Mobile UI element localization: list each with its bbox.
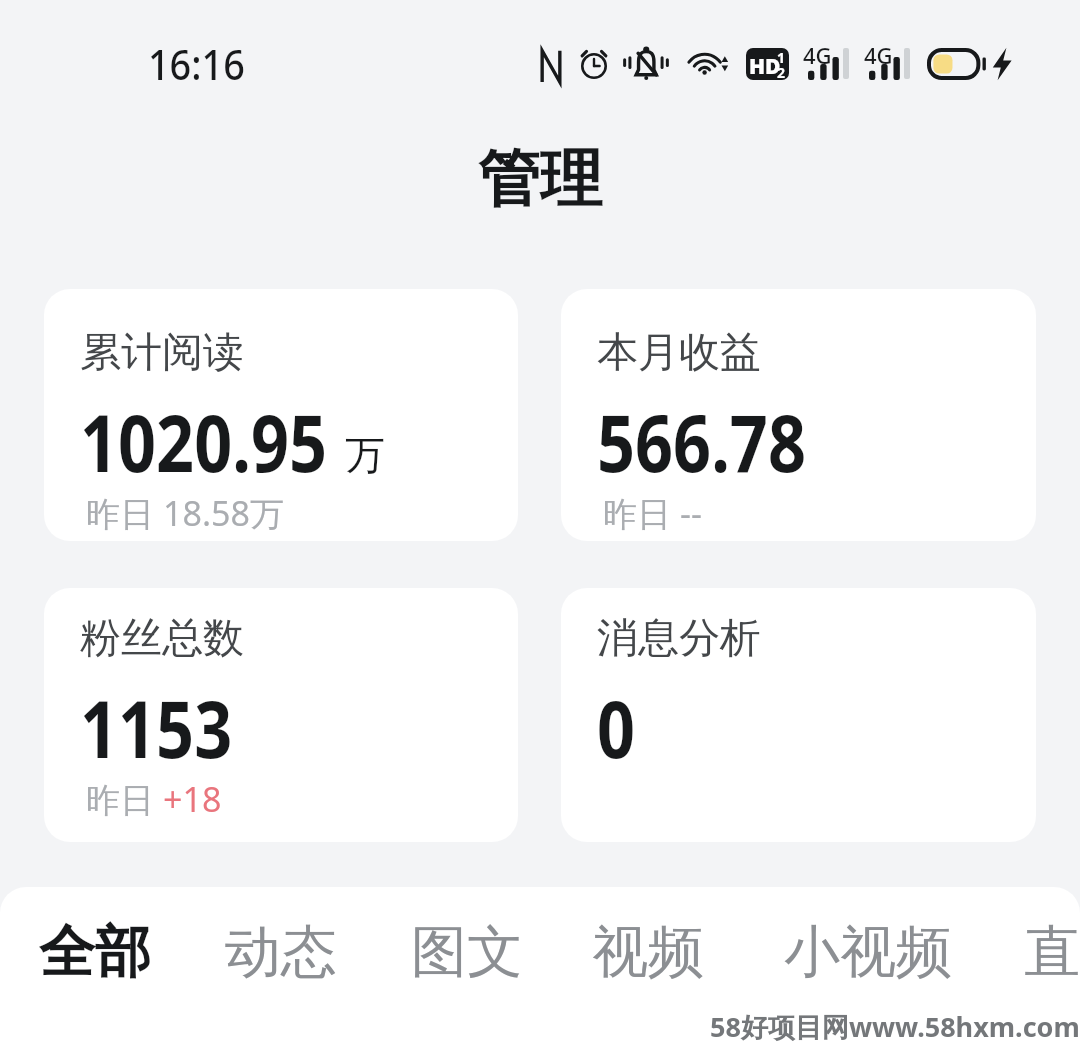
staticText: 58好项目网www.58hxm.com [710,1008,1080,1043]
other: Mobile signal [803,47,850,81]
staticText: 1020.95 [80,389,327,495]
staticText: HD [749,52,781,80]
other: Alarm [577,47,611,81]
button[interactable]: 粉丝总数 [44,588,518,842]
staticText: 4G [803,40,832,70]
button[interactable]: 全部 [25,896,165,1008]
staticText: 全部 [39,917,151,988]
other: Wi-Fi [687,45,731,79]
staticText: 16:16 [148,35,245,92]
staticText: 万 [345,430,385,480]
staticText: 消息分析 [597,613,761,665]
staticText: 1 [777,48,786,67]
staticText: 图文 [411,917,523,988]
other: HD voice calling [746,48,789,80]
staticText: 昨日 [603,490,680,536]
other: NFC [538,49,564,83]
staticText: 管理 [478,140,602,218]
other: Silent mode [622,43,670,83]
other: Mobile signal [864,47,911,81]
button[interactable]: 直播 [1010,896,1080,1008]
button[interactable]: 动态 [211,896,351,1008]
staticText: 直播 [1024,917,1080,988]
button[interactable]: 图文 [397,896,537,1008]
staticText: 昨日 [86,490,163,536]
staticText: 4G [864,40,893,70]
staticText: 566.78 [597,389,806,495]
staticText: 动态 [225,917,337,988]
button[interactable]: 消息分析 [561,588,1036,842]
staticText: 2 [777,63,786,80]
button[interactable]: 累计阅读 [44,289,518,541]
staticText: 18.58万 [163,490,284,536]
staticText: 0 [597,675,635,781]
staticText: 本月收益 [597,327,761,379]
staticText: 1153 [80,675,233,781]
staticText: 累计阅读 [80,327,244,379]
staticText: 昨日 [86,776,163,822]
button[interactable]: 小视频 [771,896,965,1008]
button[interactable]: 视频 [578,896,718,1008]
staticText: 小视频 [784,917,952,988]
staticText: -- [680,490,702,536]
other: Battery charging [927,47,1011,81]
staticText: 视频 [592,917,704,988]
button[interactable]: 本月收益 [561,289,1036,541]
staticText: +18 [163,776,222,822]
staticText: 粉丝总数 [80,613,244,665]
